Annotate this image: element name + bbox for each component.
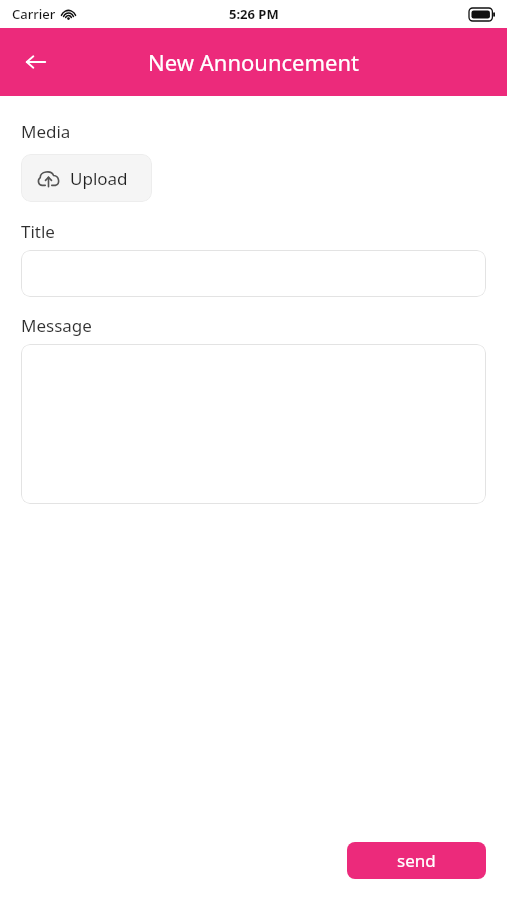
button[interactable]: Back [14,40,58,84]
button[interactable]: send [347,842,486,879]
staticText: send [397,849,436,872]
staticText: Title [21,220,55,243]
staticText: 5:26 PM [229,5,279,23]
button[interactable] [21,344,486,504]
button[interactable] [21,250,486,297]
staticText: Message [21,314,92,337]
staticText: Upload [70,167,128,190]
staticText: Carrier [12,5,56,23]
staticText: New Announcement [148,47,359,77]
staticText: Media [21,120,71,143]
button[interactable]: Upload [21,154,152,202]
